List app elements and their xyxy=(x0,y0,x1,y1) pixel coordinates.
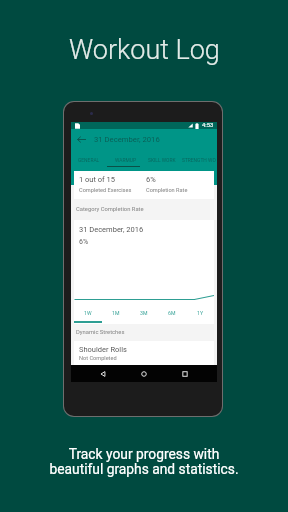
staticText: STRENGTH WO xyxy=(182,157,216,163)
staticText: Shoulder Rolls xyxy=(79,345,127,354)
staticText: Track your progress with beautiful graph… xyxy=(0,446,288,477)
staticText: Dynamic Stretches xyxy=(76,329,125,336)
staticText: 3M xyxy=(140,310,148,316)
staticText: Category Completion Rate xyxy=(76,206,217,213)
staticText: Workout Log xyxy=(69,34,220,66)
button[interactable]: Shoulder Rolls xyxy=(74,341,214,365)
staticText: SKILL WORK xyxy=(148,157,176,163)
button[interactable]: STRENGTH WO xyxy=(180,150,217,170)
staticText: 6M xyxy=(168,310,176,316)
staticText: 1M xyxy=(112,310,120,316)
button[interactable]: 1W xyxy=(74,310,102,327)
button[interactable]: 3M xyxy=(130,310,158,327)
staticText: 1 out of 15 xyxy=(79,175,115,184)
staticText: 31 December, 2016 xyxy=(94,135,160,144)
button[interactable]: 6M xyxy=(158,310,186,327)
staticText: Not Completed xyxy=(79,355,117,362)
staticText: Completion Rate xyxy=(146,187,188,194)
staticText: 1W xyxy=(84,310,92,316)
staticText: 31 December, 2016 xyxy=(79,225,144,234)
button[interactable]: Back xyxy=(93,365,113,382)
button[interactable]: SKILL WORK xyxy=(143,150,180,170)
button[interactable]: Back xyxy=(71,129,92,150)
button[interactable]: Recent apps xyxy=(175,365,195,382)
staticText: GENERAL xyxy=(78,157,100,163)
button[interactable]: 1M xyxy=(102,310,130,327)
staticText: 6% xyxy=(146,175,156,184)
button[interactable]: Home xyxy=(134,365,154,382)
button[interactable]: WARMUP xyxy=(107,150,143,170)
button[interactable]: GENERAL xyxy=(71,150,107,170)
staticText: Completed Exercises xyxy=(79,187,132,194)
staticText: WARMUP xyxy=(115,157,136,163)
staticText: 6% xyxy=(79,238,89,246)
button[interactable]: 1Y xyxy=(186,310,214,327)
staticText: 1Y xyxy=(197,310,204,316)
staticText: 4:53 xyxy=(202,122,214,129)
